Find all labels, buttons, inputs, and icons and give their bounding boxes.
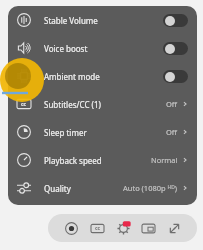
button[interactable]: Play (60, 217, 82, 239)
button[interactable]: Quality (8, 174, 197, 202)
staticText: cc (95, 225, 101, 232)
staticText: Off (166, 127, 178, 137)
button[interactable]: Picture in picture (137, 217, 159, 239)
staticText: Auto (1080p ᴴᴰ) (123, 183, 178, 193)
staticText: cc (21, 101, 27, 108)
staticText: Ambient mode (44, 71, 100, 82)
staticText: Off (166, 99, 178, 109)
staticText: Playback speed (44, 155, 102, 166)
staticText: Subtitles/CC (1) (44, 99, 101, 110)
button[interactable]: Captions (86, 217, 108, 239)
button[interactable]: cc (8, 90, 197, 118)
staticText: Normal (151, 155, 178, 165)
staticText: Voice boost (44, 43, 88, 54)
button[interactable]: Settings (112, 217, 134, 239)
button[interactable]: Sleep timer (8, 118, 197, 146)
button[interactable]: Expand (163, 217, 185, 239)
staticText: Stable Volume (44, 15, 98, 26)
button[interactable]: Voice boost (8, 34, 197, 62)
staticText: Quality (44, 183, 71, 194)
button[interactable]: Playback speed (8, 146, 197, 174)
staticText: Sleep timer (44, 127, 87, 138)
button[interactable]: Stable Volume (8, 6, 197, 34)
button[interactable]: Ambient mode (8, 62, 197, 90)
